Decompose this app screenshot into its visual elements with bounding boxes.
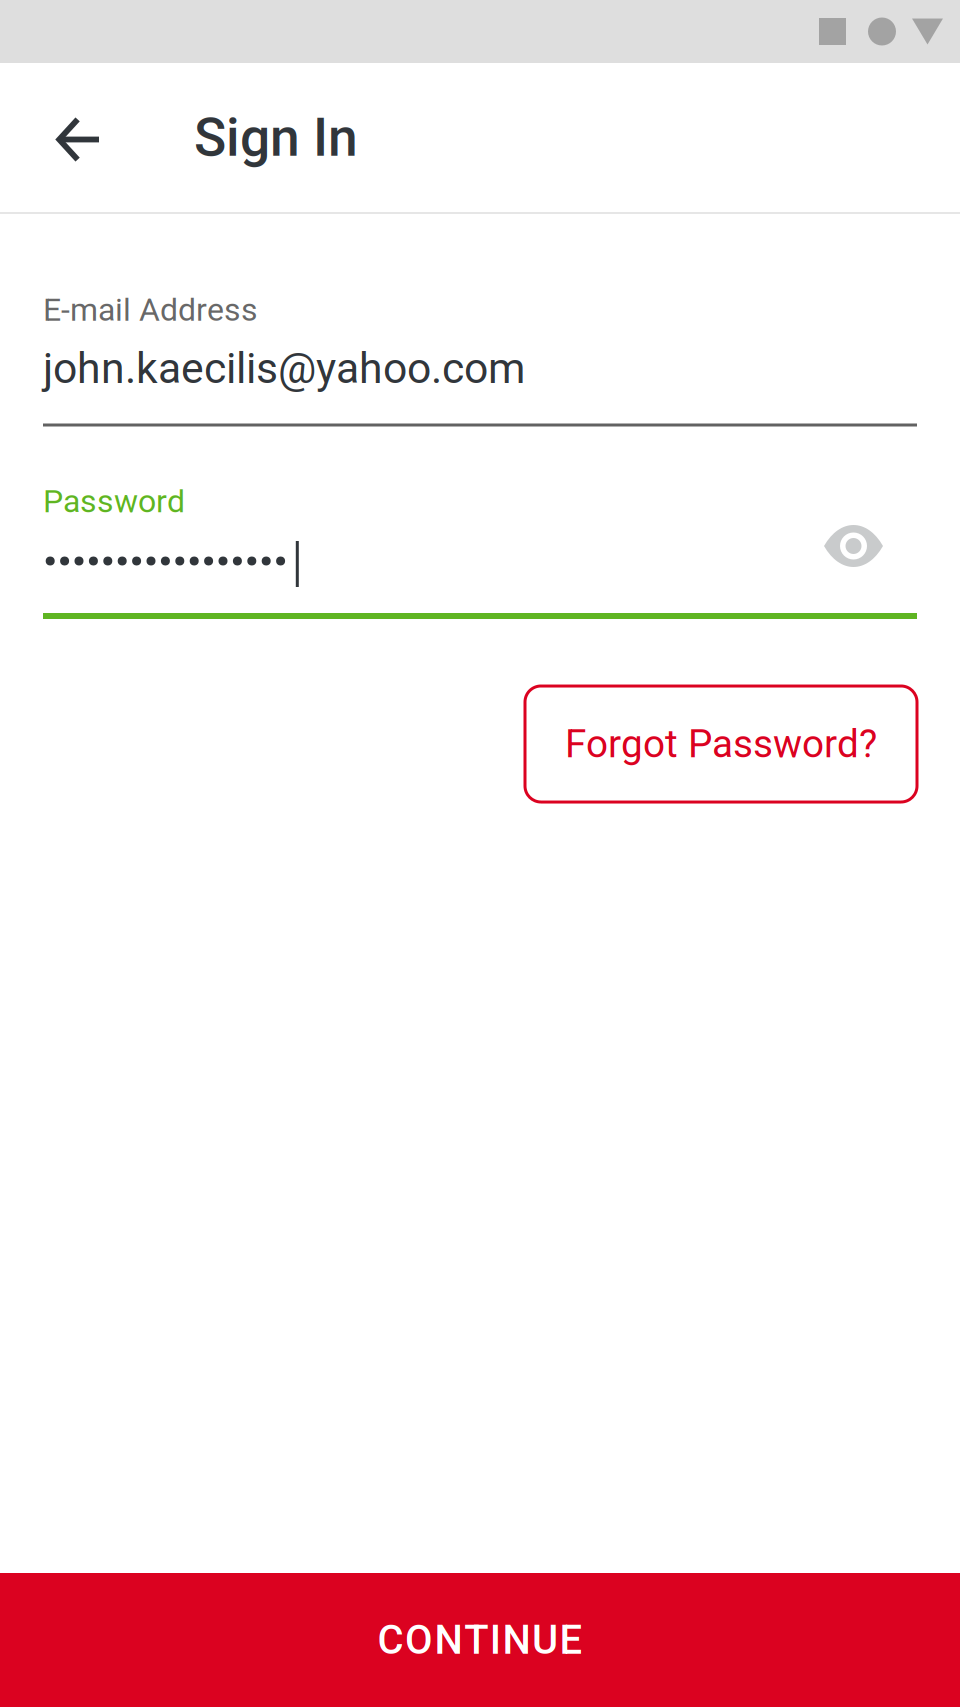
button[interactable]: Forgot Password? — [525, 686, 917, 802]
staticText: john.kaecilis@yahoo.com — [43, 343, 525, 393]
button[interactable]: Back — [0, 63, 194, 212]
button[interactable]: Show password — [824, 526, 883, 566]
staticText: CONTINUE — [377, 1617, 583, 1663]
staticText: Sign In — [194, 106, 358, 169]
button[interactable]: CONTINUE — [0, 1573, 960, 1707]
staticText: Forgot Password? — [565, 721, 877, 767]
staticText: Password — [43, 482, 185, 520]
staticText: E-mail Address — [43, 291, 258, 328]
